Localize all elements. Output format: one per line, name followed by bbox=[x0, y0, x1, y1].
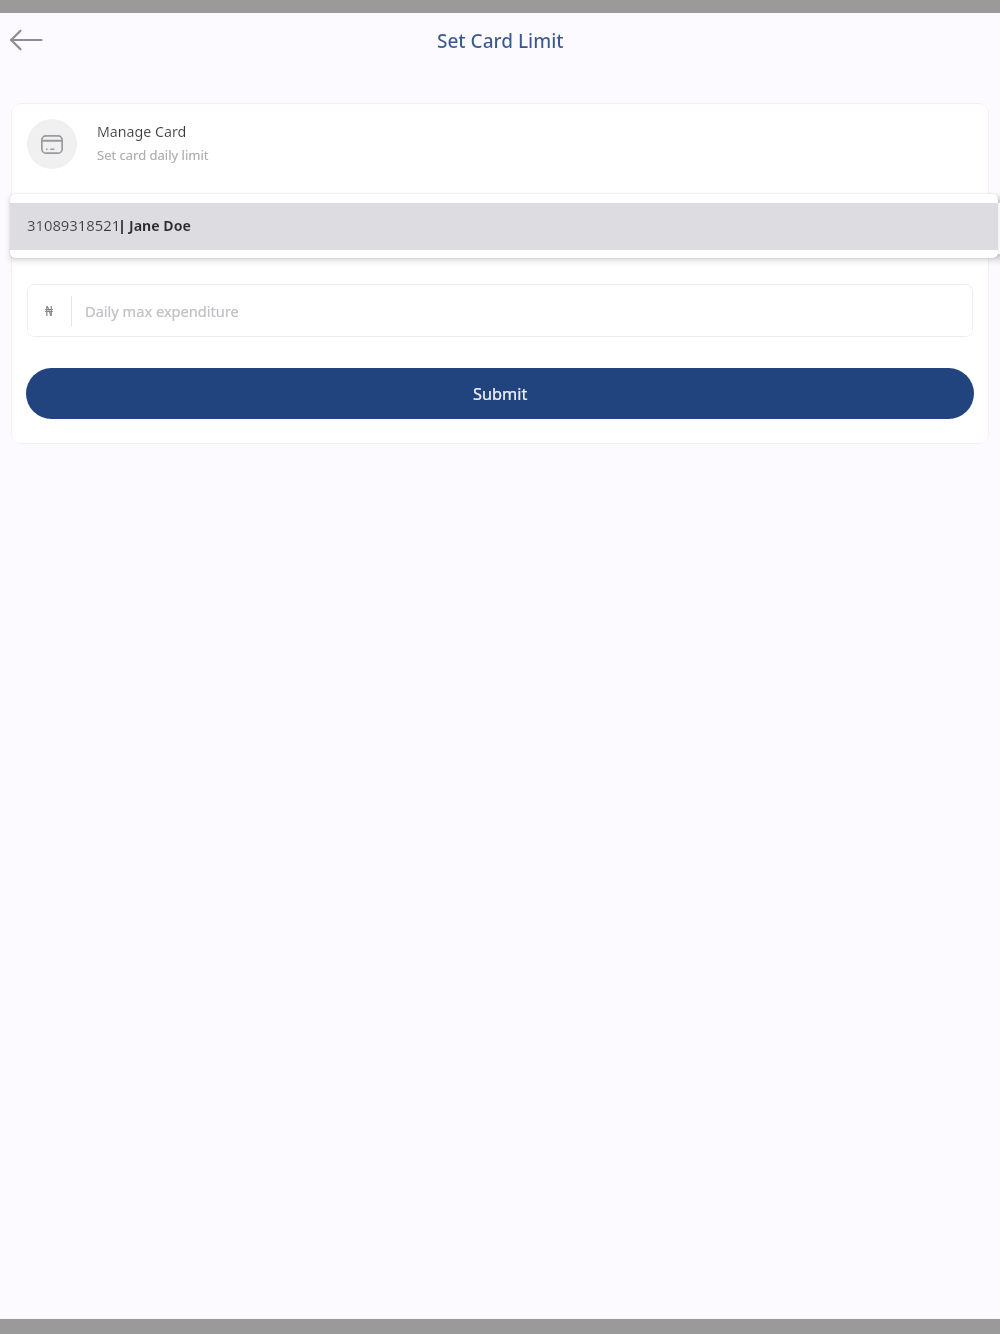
button[interactable]: ₦ bbox=[27, 284, 973, 337]
staticText: ₦ bbox=[45, 301, 54, 320]
button[interactable]: Back bbox=[4, 18, 48, 62]
staticText: 31089318521 bbox=[27, 215, 121, 235]
staticText: Set card daily limit bbox=[97, 146, 209, 164]
staticText: Manage Card bbox=[97, 122, 187, 141]
button[interactable]: Submit bbox=[26, 368, 974, 419]
staticText: Submit bbox=[473, 383, 528, 405]
staticText: Jane Doe bbox=[129, 216, 191, 235]
staticText: Set Card Limit bbox=[437, 28, 564, 54]
staticText: Daily max expenditure bbox=[85, 301, 239, 321]
button[interactable]: 31089318521 bbox=[10, 203, 998, 250]
